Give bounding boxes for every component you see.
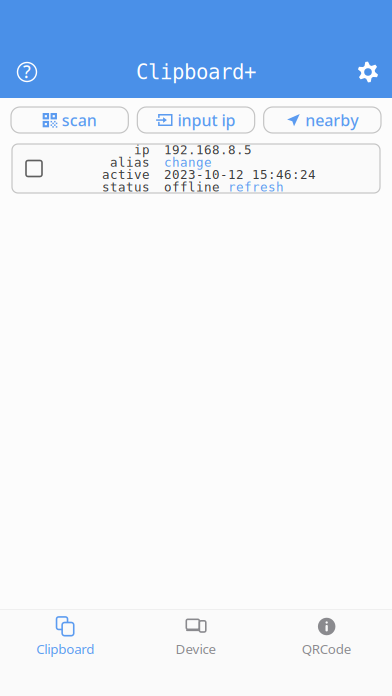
staticText: input ip <box>177 109 235 131</box>
button[interactable]: Device <box>131 616 261 658</box>
staticText: Clipboard+ <box>136 60 256 84</box>
staticText: change <box>164 155 212 170</box>
button[interactable]: QRCode <box>261 616 392 658</box>
staticText <box>220 180 228 194</box>
button[interactable]: Help <box>15 60 39 84</box>
staticText: nearby <box>305 109 358 131</box>
staticText: status <box>102 180 150 194</box>
button[interactable]: scan <box>11 107 128 133</box>
staticText: 192.168.8.5 <box>164 143 252 157</box>
staticText: 2023-10-12 15:46:24 <box>164 167 316 182</box>
staticText: Clipboard <box>36 640 94 658</box>
button[interactable]: Select device <box>20 154 48 182</box>
button[interactable]: input ip <box>137 107 255 133</box>
staticText: refresh <box>228 180 284 194</box>
staticText: scan <box>62 109 97 131</box>
staticText: ip <box>134 143 150 157</box>
staticText: alias <box>110 155 150 170</box>
staticText: Device <box>175 640 216 658</box>
button[interactable]: Clipboard <box>0 616 131 658</box>
staticText: active <box>102 167 150 182</box>
staticText: offline <box>164 180 220 194</box>
staticText: QRCode <box>302 640 352 658</box>
staticText: ? <box>23 60 31 83</box>
button[interactable]: Settings <box>357 61 379 83</box>
button[interactable]: nearby <box>264 107 381 133</box>
